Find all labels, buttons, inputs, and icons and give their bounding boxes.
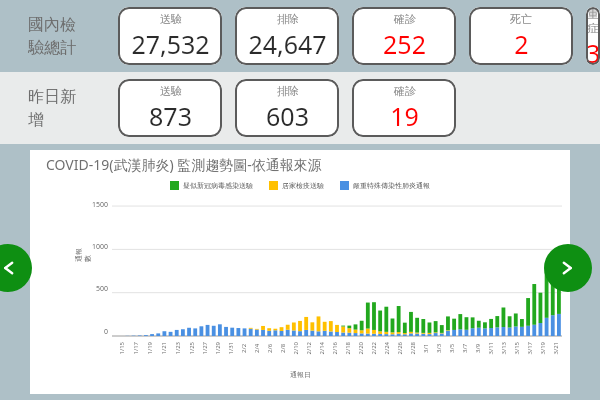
staticText: 1500 [84,200,108,210]
staticText: 2 [514,27,529,61]
button[interactable]: 送驗 [118,7,222,65]
staticText: 2/26 [395,341,403,354]
staticText: 1000 [84,242,108,252]
staticText: 3/5 [448,343,456,353]
staticText: 重症 [586,7,600,35]
button[interactable]: 重症 [586,7,600,65]
staticText: 通報數 [74,248,92,262]
button[interactable]: COVID-19(武漢肺炎) 監測趨勢圖-依通報來源 [30,150,570,394]
staticText: 3/11 [486,341,494,354]
staticText: 2/6 [266,343,274,353]
staticText: 3/3 [435,343,443,353]
button[interactable]: 確診 [352,7,456,65]
staticText: 1/27 [200,341,208,354]
staticText: 1/17 [131,341,139,354]
staticText: 3/21 [551,341,559,354]
staticText: 疑似新冠病毒感染送驗 [183,181,253,190]
button[interactable]: Next [544,244,592,292]
staticText: 3/17 [525,341,533,354]
staticText: 1/21 [159,341,167,354]
staticText: 國內檢 驗總計 [28,15,76,58]
staticText: 死亡 [510,12,532,26]
staticText: 2/24 [382,341,390,354]
staticText: 排除 [277,12,299,26]
staticText: 1/31 [226,341,234,354]
staticText: 嚴重特殊傳染性肺炎通報 [353,181,430,190]
staticText: 2/28 [408,341,416,354]
staticText: 24,647 [248,27,327,61]
staticText: 2/14 [317,341,325,354]
staticText: 1/15 [117,341,125,354]
staticText: 居家檢疫送驗 [282,181,324,190]
staticText: 2/16 [330,341,338,354]
staticText: 1/25 [187,341,195,354]
staticText: 2/4 [253,343,261,353]
staticText: 0 [84,327,108,337]
staticText: 252 [383,27,426,61]
staticText: 19 [390,99,419,133]
staticText: 通報日 [290,370,311,379]
staticText: 30 [586,36,600,65]
staticText: 500 [84,284,108,294]
button[interactable]: 送驗 [118,79,222,137]
staticText: 2/22 [369,341,377,354]
staticText: 1/19 [145,341,153,354]
staticText: 2/18 [343,341,351,354]
staticText: COVID-19(武漢肺炎) 監測趨勢圖-依通報來源 [46,155,322,174]
staticText: 排除 [277,84,299,98]
staticText: 3/13 [499,341,507,354]
staticText: 3/9 [474,343,482,353]
staticText: 送驗 [160,84,182,98]
button[interactable]: 排除 [235,7,339,65]
staticText: 確診 [394,84,416,98]
staticText: 送驗 [160,12,182,26]
staticText: 3/15 [512,341,520,354]
staticText: 2/8 [279,343,287,353]
staticText: 昨日新 增 [28,87,76,130]
staticText: 2/2 [240,343,248,353]
staticText: 27,532 [131,27,210,61]
staticText: 1/29 [213,341,221,354]
staticText: 2/20 [356,341,364,354]
staticText: 確診 [394,12,416,26]
button[interactable]: 確診 [352,79,456,137]
button[interactable]: Previous [0,244,32,292]
staticText: 3/7 [461,343,469,353]
button[interactable]: 排除 [235,79,339,137]
staticText: 2/10 [291,341,299,354]
staticText: 873 [149,99,192,133]
staticText: 603 [266,99,309,133]
staticText: 2/12 [304,341,312,354]
staticText: 3/1 [422,343,430,353]
staticText: 3/19 [538,341,546,354]
staticText: 1/23 [173,341,181,354]
button[interactable]: 死亡 [469,7,573,65]
